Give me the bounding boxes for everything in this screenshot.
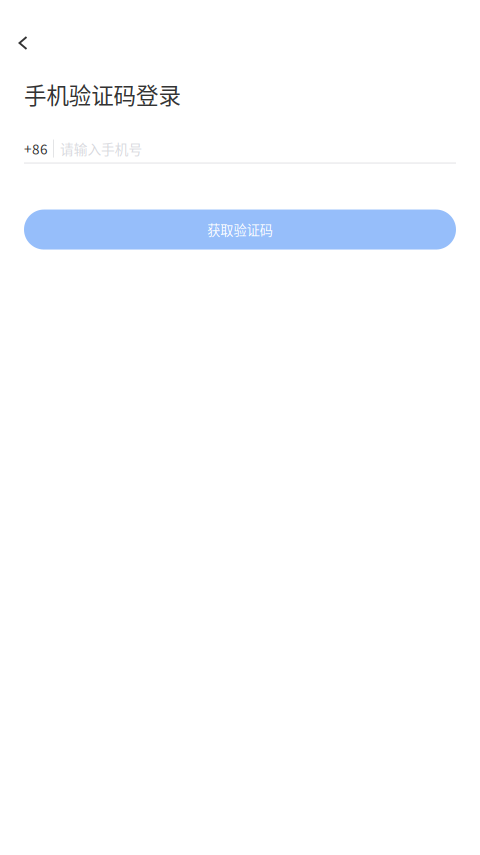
staticText: 请输入手机号 xyxy=(60,139,142,158)
staticText: +86 xyxy=(24,139,48,158)
staticText: 手机验证码登录 xyxy=(24,78,180,111)
staticText: 获取验证码 xyxy=(207,220,273,239)
button[interactable]: 获取验证码 xyxy=(24,210,456,250)
button[interactable]: +86 xyxy=(24,139,456,159)
button[interactable]: 返回 xyxy=(0,21,45,65)
